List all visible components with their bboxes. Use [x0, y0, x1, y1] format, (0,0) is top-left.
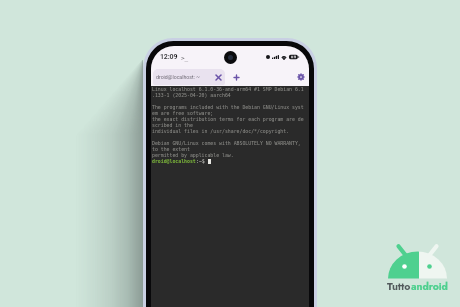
staticText: em are free software; — [152, 110, 214, 116]
staticText: Linux localhost 6.1.0-36-and-arm64 #1 SM… — [152, 86, 304, 92]
staticText: scribed in the — [152, 122, 193, 128]
staticText: The programs included with the Debian GN… — [152, 104, 304, 110]
staticText: 12:09 — [160, 53, 178, 61]
staticText: android — [411, 279, 448, 294]
staticText: permitted by applicable law. — [152, 152, 234, 158]
staticText: Tutto — [387, 279, 411, 294]
staticText: to the extent — [152, 146, 190, 152]
staticText: droid@localhost — [152, 158, 196, 164]
button[interactable]: Close tab — [213, 72, 224, 83]
button[interactable]: Settings — [294, 70, 308, 84]
staticText: the exact distribution terms for each pr… — [152, 116, 304, 122]
button[interactable]: New tab — [230, 71, 243, 84]
staticText: droid@localhost: ~ — [156, 74, 213, 80]
staticText: individual files in /usr/share/doc/*/cop… — [152, 128, 290, 134]
staticText: Debian GNU/Linux comes with ABSOLUTELY N… — [152, 140, 301, 146]
staticText: >_ — [181, 54, 189, 61]
staticText: :~$ — [196, 158, 208, 164]
button[interactable]: droid@localhost: ~ — [153, 69, 225, 85]
staticText: .133-1 (2025-04-20) aarch64 — [152, 92, 231, 98]
